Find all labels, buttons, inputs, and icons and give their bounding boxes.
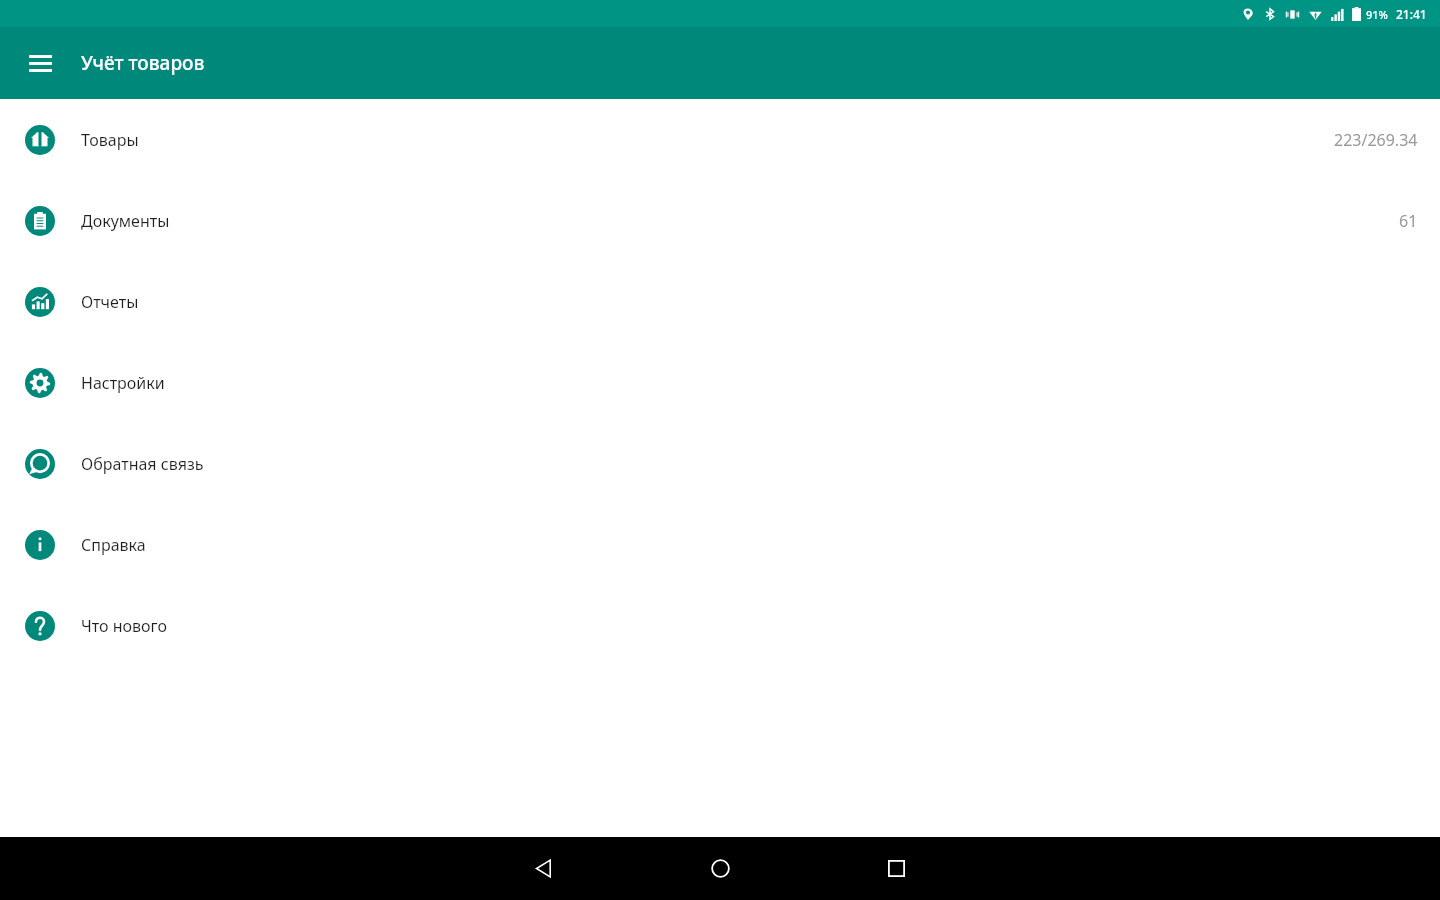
button[interactable]: Обратная связь — [0, 423, 1440, 504]
button[interactable]: Open navigation drawer — [17, 40, 63, 86]
staticText: Документы — [81, 210, 170, 232]
staticText: Настройки — [81, 372, 165, 394]
staticText: 21:41 — [1396, 6, 1427, 22]
staticText: Обратная связь — [81, 453, 204, 475]
staticText: Отчеты — [81, 291, 139, 313]
button[interactable]: Справка — [0, 504, 1440, 585]
staticText: 223/269.34 — [1334, 129, 1418, 151]
button[interactable]: Товары — [0, 99, 1440, 180]
staticText: Что нового — [81, 615, 167, 637]
button[interactable]: Что нового — [0, 585, 1440, 666]
staticText: Справка — [81, 534, 146, 556]
button[interactable]: Back — [511, 837, 577, 900]
staticText: 61 — [1399, 210, 1418, 232]
button[interactable]: Документы — [0, 180, 1440, 261]
button[interactable]: Настройки — [0, 342, 1440, 423]
staticText: 91% — [1366, 7, 1388, 22]
button[interactable]: Home — [687, 837, 753, 900]
staticText: Учёт товаров — [81, 50, 205, 76]
button[interactable]: Отчеты — [0, 261, 1440, 342]
staticText: Товары — [81, 129, 139, 151]
button[interactable]: Recent apps — [863, 837, 929, 900]
